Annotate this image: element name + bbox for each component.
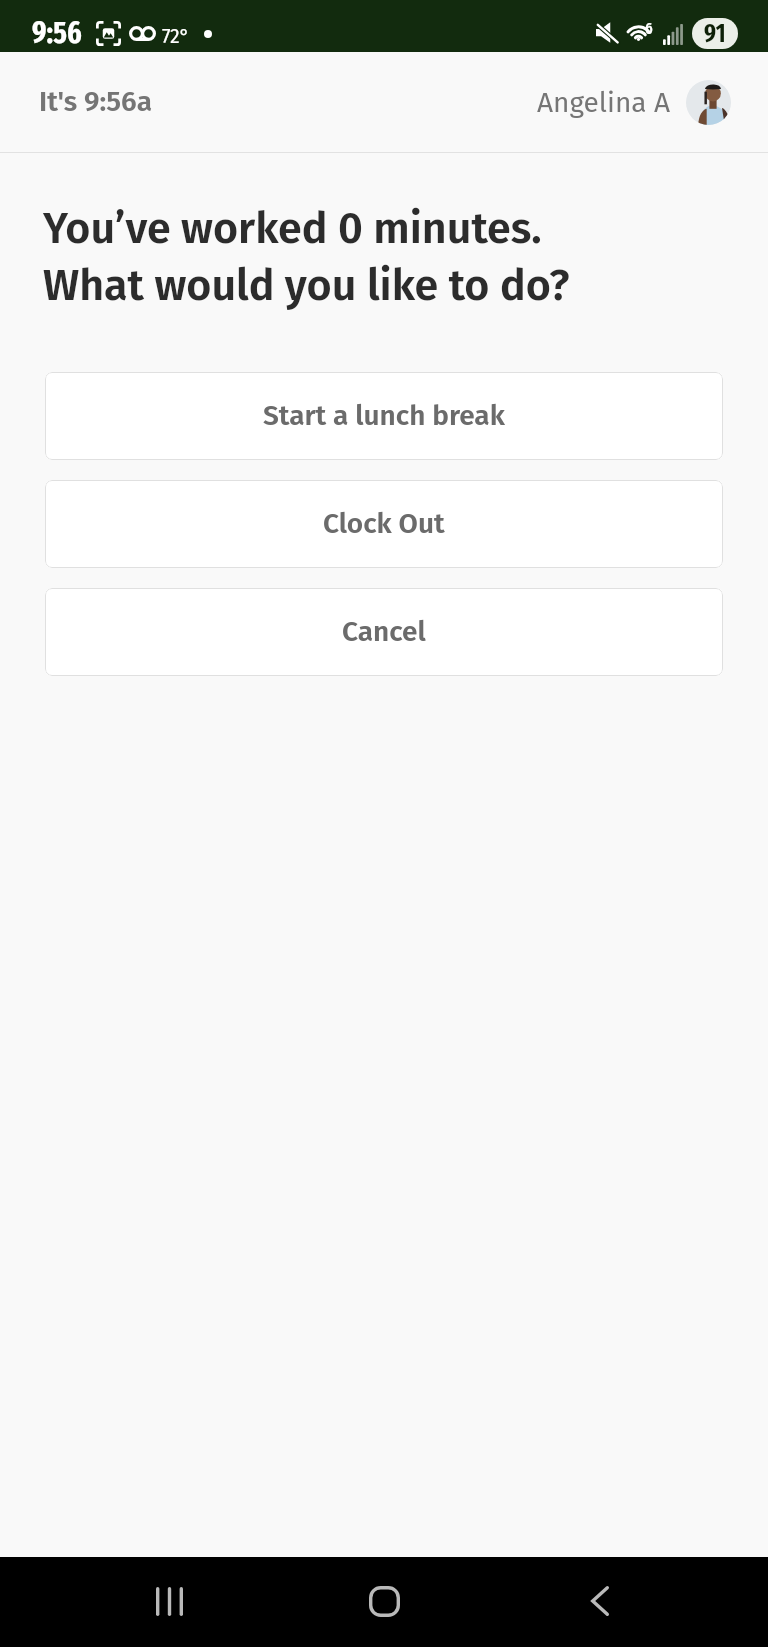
staticText: Start a lunch break <box>263 399 505 433</box>
staticText: 72° <box>162 23 190 48</box>
staticText: 91 <box>704 19 726 49</box>
staticText: 9:56 <box>32 15 82 51</box>
button[interactable]: Recent apps <box>109 1557 229 1647</box>
button[interactable]: Angelina A <box>537 80 731 125</box>
staticText: You’ve worked 0 minutes. What would you … <box>43 203 570 311</box>
staticText: Clock Out <box>323 507 445 541</box>
staticText: It's 9:56a <box>39 85 152 119</box>
staticText: Angelina A <box>537 86 671 120</box>
button[interactable]: Home <box>324 1557 444 1647</box>
button[interactable]: Clock Out <box>45 480 723 568</box>
staticText: 6 <box>645 19 653 38</box>
button[interactable]: Start a lunch break <box>45 372 723 460</box>
other: Profile photo <box>686 80 731 125</box>
button[interactable]: Back <box>540 1557 660 1647</box>
staticText: Cancel <box>342 615 426 649</box>
button[interactable]: Cancel <box>45 588 723 676</box>
